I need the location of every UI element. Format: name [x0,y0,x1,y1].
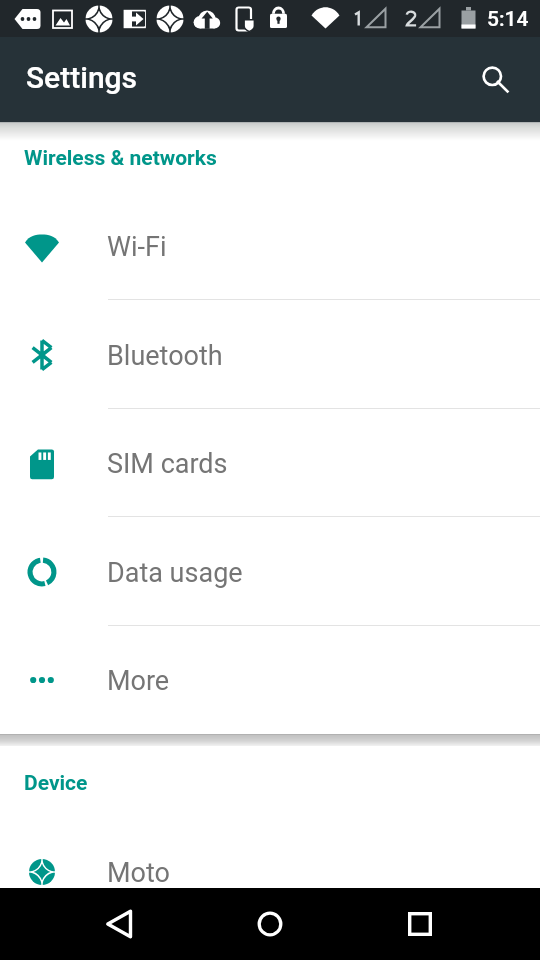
staticText: Wi-Fi [107,231,167,263]
button[interactable]: More [0,625,540,734]
button[interactable]: Recent apps [356,888,484,960]
button[interactable]: Data usage [0,517,540,626]
staticText: SIM cards [107,448,228,480]
staticText: Wireless & networks [24,146,217,171]
button[interactable]: Moto [0,817,540,926]
button[interactable]: Home [206,888,334,960]
staticText: 5:14 [487,7,529,32]
button[interactable]: SIM cards [0,408,540,517]
staticText: Device [24,771,88,796]
staticText: Data usage [107,557,243,589]
button[interactable]: Wi-Fi [0,191,540,300]
staticText: Settings [26,60,138,95]
button[interactable]: Bluetooth [0,300,540,409]
button[interactable]: Back [56,888,184,960]
staticText: Bluetooth [107,340,223,372]
staticText: More [107,665,170,697]
staticText: Moto [107,857,170,889]
button[interactable]: Search [468,52,524,108]
